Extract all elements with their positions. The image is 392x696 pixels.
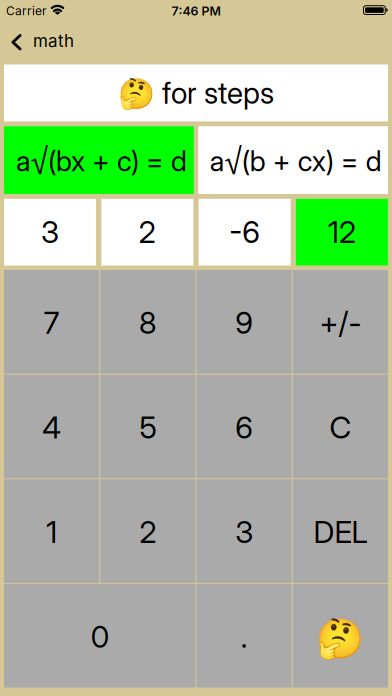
staticText: 3 xyxy=(235,514,253,550)
staticText: C xyxy=(329,409,351,446)
staticText: 1 xyxy=(46,514,57,550)
button[interactable]: Back xyxy=(0,32,74,53)
button[interactable]: 2 xyxy=(100,479,195,583)
staticText: 4 xyxy=(42,409,61,446)
staticText: -6 xyxy=(229,214,260,250)
staticText: . xyxy=(241,618,248,655)
staticText: 7:46 PM xyxy=(171,3,220,18)
staticText: 2 xyxy=(139,214,156,250)
staticText: 9 xyxy=(235,305,253,341)
staticText: a√(bx + c) = d xyxy=(16,139,187,183)
button[interactable]: a√(b + cx) = d xyxy=(198,126,388,194)
button[interactable]: 1 xyxy=(4,479,99,583)
button[interactable]: 6 xyxy=(196,375,292,478)
button[interactable]: DEL xyxy=(293,479,388,583)
button[interactable]: Show steps xyxy=(293,584,388,687)
button[interactable]: 4 xyxy=(4,375,99,478)
staticText: 7 xyxy=(44,305,60,341)
button[interactable]: 9 xyxy=(196,270,292,374)
staticText: 🤔 for steps xyxy=(118,75,274,111)
button[interactable]: -6 xyxy=(199,199,291,265)
button[interactable]: 2 xyxy=(101,199,193,265)
button[interactable]: 5 xyxy=(100,375,195,478)
staticText: 8 xyxy=(139,305,157,341)
button[interactable]: C xyxy=(293,375,388,478)
button[interactable]: 3 xyxy=(4,199,96,265)
staticText: math xyxy=(33,30,74,51)
button[interactable]: 7 xyxy=(4,270,99,374)
button[interactable]: 8 xyxy=(100,270,195,374)
staticText: 0 xyxy=(91,618,109,655)
staticText: 5 xyxy=(139,409,156,446)
staticText: DEL xyxy=(313,514,367,550)
staticText: 6 xyxy=(235,409,253,446)
button[interactable]: 0 xyxy=(4,584,195,687)
staticText: 2 xyxy=(139,514,156,550)
button[interactable]: a√(bx + c) = d xyxy=(4,126,194,194)
staticText: 3 xyxy=(41,214,59,250)
button[interactable]: 12 xyxy=(296,199,388,265)
staticText: 🤔 xyxy=(316,616,364,662)
button[interactable]: . xyxy=(196,584,292,687)
staticText: Carrier xyxy=(6,4,47,18)
staticText: 12 xyxy=(328,214,356,250)
staticText: +/- xyxy=(319,305,361,341)
button[interactable]: 3 xyxy=(196,479,292,583)
button[interactable]: +/- xyxy=(293,270,388,374)
staticText: a√(b + cx) = d xyxy=(210,139,382,183)
